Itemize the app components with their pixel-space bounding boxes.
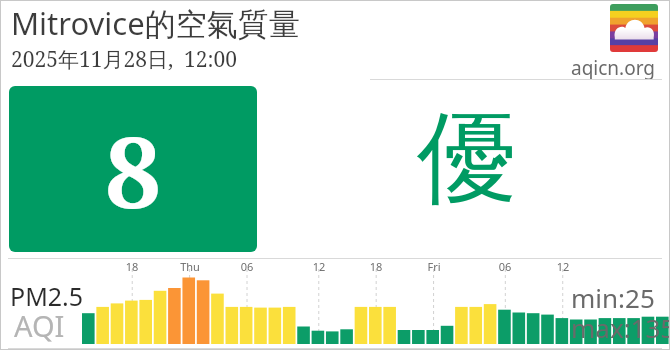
staticText: aqicn.org (571, 55, 656, 81)
staticText: 18 (358, 259, 394, 274)
button[interactable]: 8 (9, 86, 257, 252)
staticText: max:135 (571, 310, 670, 345)
staticText: AQI (14, 306, 65, 345)
staticText: 12 (545, 259, 581, 274)
staticText: 2025年11月28日, 12:00 (11, 45, 238, 74)
staticText: 優 (406, 96, 528, 222)
staticText: Fri (416, 259, 452, 274)
staticText: Mitrovice的空氣質量 (11, 2, 300, 44)
button[interactable]: aqicn.org logo (610, 4, 658, 52)
staticText: 12 (301, 259, 337, 274)
staticText: PM2.5 (10, 279, 84, 313)
staticText: 18 (114, 259, 150, 274)
staticText: Thu (172, 259, 208, 274)
staticText: min:25 (571, 280, 655, 315)
staticText: 06 (229, 259, 265, 274)
staticText: 8 (105, 102, 161, 237)
staticText: 06 (487, 259, 523, 274)
